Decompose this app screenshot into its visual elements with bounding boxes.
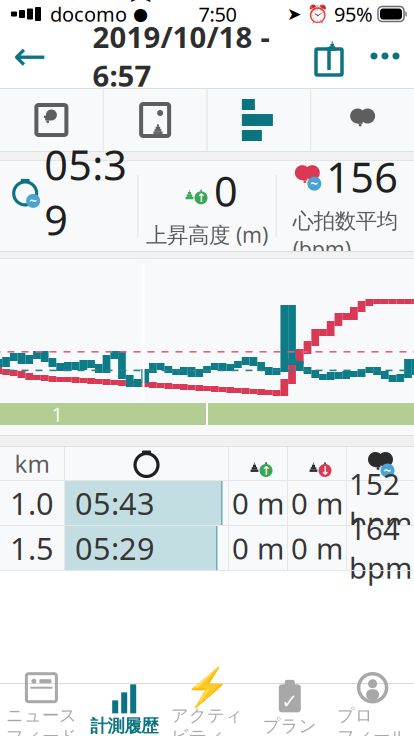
staticText: 05:29 [75,528,155,568]
button[interactable]: Back [0,34,60,78]
staticText: 1 [51,401,62,427]
staticText: docomo [50,1,127,27]
staticText: 05:39 [44,137,127,247]
button[interactable]: ✓ [248,684,331,736]
staticText: 計測履歴 [90,715,158,736]
staticText: 心拍数平均 (bpm) [293,206,398,263]
staticText: ~ [310,175,318,192]
staticText: km [14,448,49,479]
button[interactable]: Share [302,34,356,78]
staticText: ➤ [287,4,302,24]
staticText: 上昇高度 (m) [146,220,268,249]
staticText: 0 m [291,483,343,522]
staticText: ● [133,4,148,24]
staticText: 152 bpm [349,464,412,542]
staticText: ← [13,33,47,79]
button[interactable]: 計測履歴 [83,684,166,736]
staticText: 2019/10/18 - 6:57 [92,17,269,95]
staticText: プロフィール [337,705,408,736]
staticText: 05:43 [75,483,155,523]
staticText: 1.0 [10,483,54,523]
staticText: ✓ [281,690,298,713]
button[interactable]: プロフィール [331,684,414,736]
staticText: 0 [214,163,238,218]
staticText: 平均ペース [15,249,122,275]
staticText: ~ [383,462,391,479]
staticText: ニュースフィード [6,705,77,736]
staticText: 7:50 [198,1,236,27]
staticText: ~ [29,192,37,210]
button[interactable]: Photos [104,89,207,151]
staticText: 0 m [232,528,284,567]
staticText: 0 m [232,483,284,522]
button[interactable]: ⚡ [166,684,248,736]
button[interactable]: 1.0 [0,481,414,525]
staticText: プラン [263,715,317,736]
staticText: アクティビティ [171,705,243,736]
staticText: ↓ [320,464,330,477]
staticText: ⏰ [307,4,329,24]
staticText: 164 bpm [349,509,412,587]
button[interactable]: ニュースフィード [0,684,83,736]
button[interactable]: Heart rate [311,89,414,151]
button[interactable]: Map [0,89,103,151]
staticText: ⚡ [184,666,230,709]
button[interactable]: Splits, selected [207,89,310,151]
button[interactable]: More options [356,34,414,78]
staticText: ⌒ [129,0,152,23]
staticText: ↑ [196,191,206,205]
staticText: 0 m [291,528,343,567]
staticText: 1.5 [10,528,54,568]
button[interactable]: 1.5 [0,526,414,570]
staticText: 95% [334,1,373,27]
staticText: 156 [326,149,398,204]
staticText: ↑ [261,464,271,477]
